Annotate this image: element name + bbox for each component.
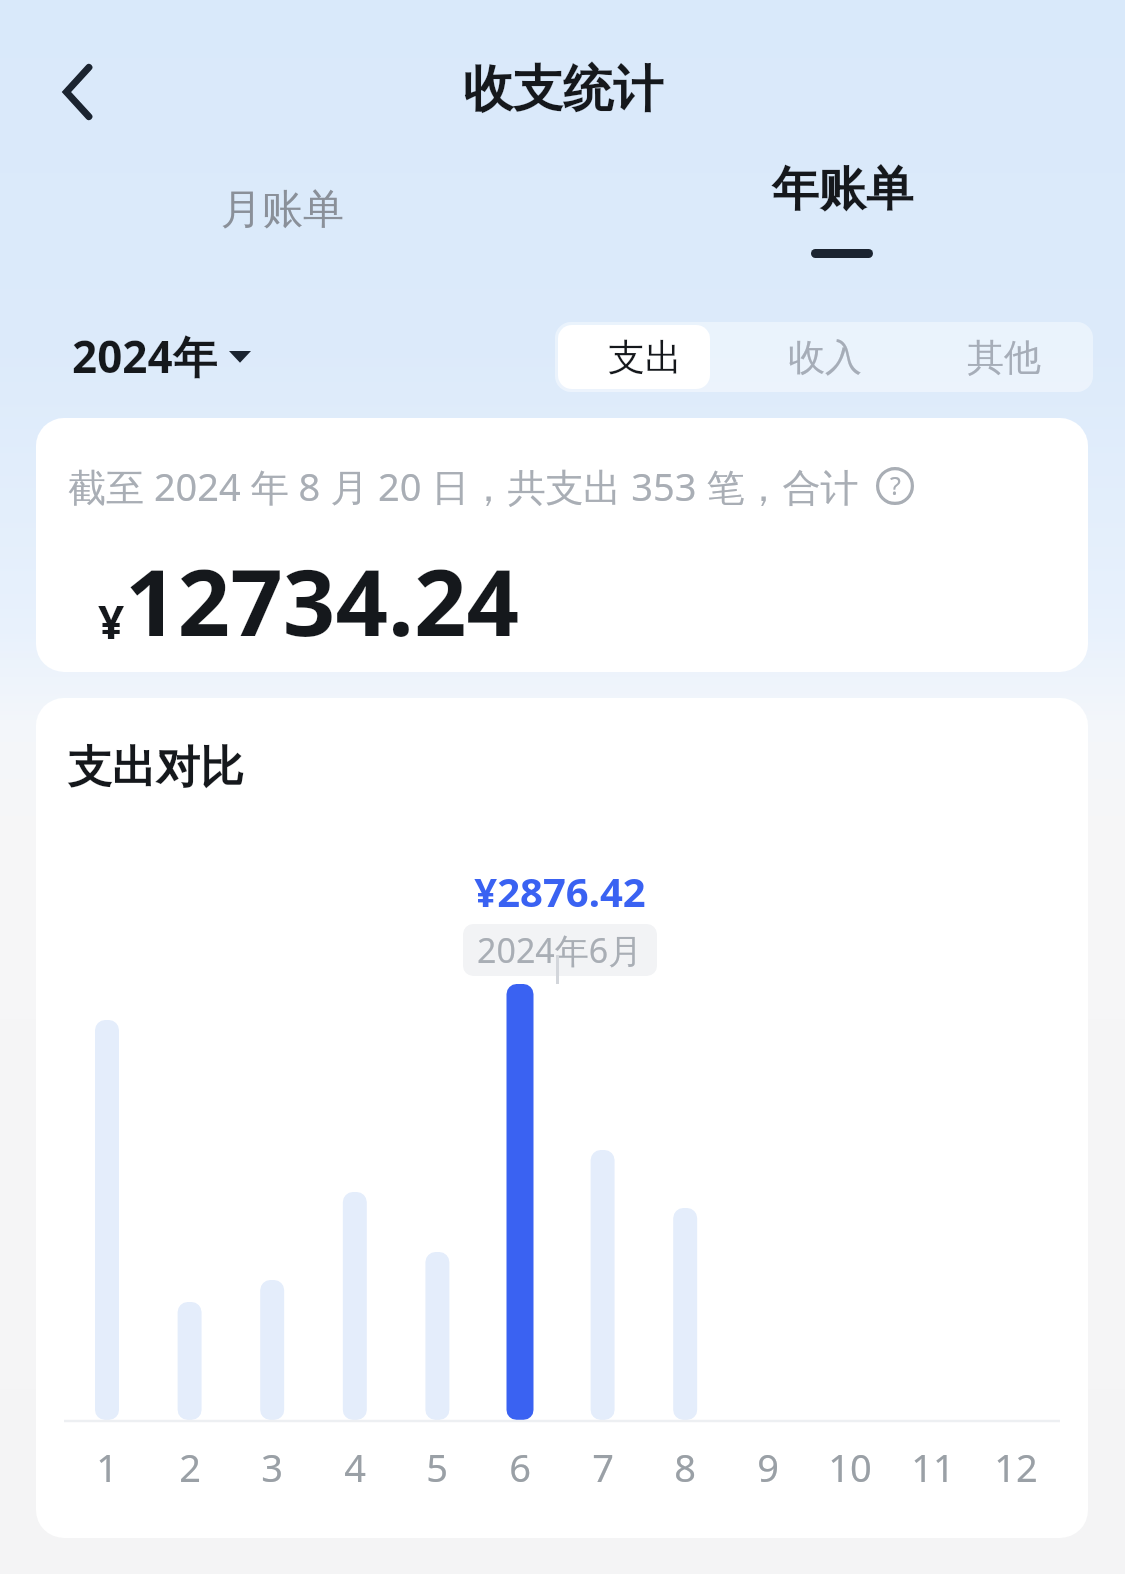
button[interactable]: 年账单 <box>712 160 972 264</box>
button[interactable]: 截至 2024 年 8 月 20 日，共支出 353 笔，合计 <box>36 418 1088 672</box>
staticText: 4 <box>344 1441 366 1493</box>
button[interactable]: 月账单 <box>152 168 412 252</box>
button[interactable]: 收入 <box>735 322 914 392</box>
staticText: 年账单 <box>772 160 913 219</box>
staticText: 3 <box>261 1441 283 1493</box>
staticText: 其他 <box>967 334 1041 381</box>
staticText: 截至 2024 年 8 月 20 日，共支出 353 笔，合计 <box>68 460 859 512</box>
staticText: 6 <box>509 1441 531 1493</box>
staticText: 11 <box>911 1441 955 1493</box>
button[interactable]: 2024年 <box>64 320 259 392</box>
staticText: 2024年 <box>72 326 217 386</box>
staticText: 7 <box>592 1441 614 1493</box>
staticText: 2024年6月 <box>477 927 643 973</box>
staticText: 9 <box>757 1441 779 1493</box>
staticText: ¥ <box>98 590 125 653</box>
button[interactable]: Back <box>28 42 128 142</box>
button[interactable]: Help <box>873 464 917 508</box>
staticText: 1 <box>96 1441 118 1493</box>
staticText: 12 <box>994 1441 1038 1493</box>
staticText: 10 <box>828 1441 872 1493</box>
staticText: 支出 <box>608 334 682 381</box>
button[interactable]: 支出 <box>555 322 735 392</box>
staticText: 月账单 <box>221 184 344 236</box>
button[interactable]: 其他 <box>914 322 1093 392</box>
staticText: ¥2876.42 <box>436 864 684 918</box>
staticText: 支出对比 <box>68 740 244 795</box>
staticText: ? <box>890 468 901 502</box>
staticText: 2 <box>179 1441 201 1493</box>
staticText: 5 <box>426 1441 448 1493</box>
staticText: 收入 <box>788 334 862 381</box>
staticText: 收支统计 <box>463 58 663 121</box>
staticText: 8 <box>674 1441 696 1493</box>
staticText: 12734.24 <box>125 538 520 663</box>
